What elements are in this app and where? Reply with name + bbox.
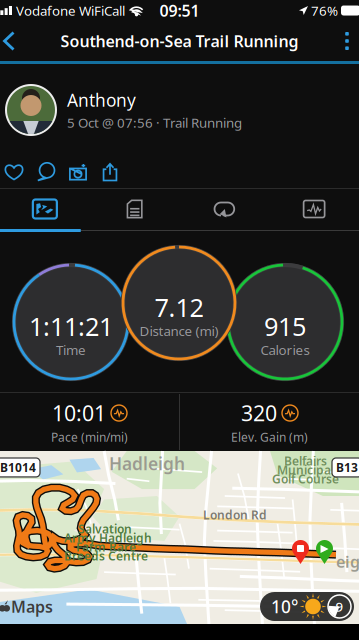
button[interactable]: Share (94, 156, 126, 188)
staticText: Time (56, 341, 86, 359)
staticText: Hadleigh (109, 452, 185, 475)
staticText: Breeds Centre (64, 548, 148, 564)
staticText: Golf Course (272, 471, 339, 487)
button[interactable]: Back (0, 21, 27, 61)
button[interactable]: More options (326, 21, 359, 61)
staticText: Calories (260, 341, 309, 359)
staticText: 5 Oct @ 07:56 · Trail Running (67, 114, 242, 131)
staticText: Southend-on-Sea Trail Running (60, 30, 298, 52)
button[interactable]: Details (90, 189, 180, 229)
staticText: 915 (264, 309, 306, 343)
button[interactable]: Map (0, 189, 90, 229)
staticText: 1:11:21 (29, 309, 113, 343)
staticText: Maps (11, 596, 53, 617)
button[interactable]: Charts (269, 189, 359, 229)
button[interactable]: Laps (179, 189, 269, 229)
staticText: Distance (mi) (139, 322, 218, 340)
staticText: 76% (311, 2, 338, 19)
button[interactable]: Like (0, 156, 30, 188)
staticText: 09:51 (159, 0, 199, 21)
staticText: Army Hadleigh (64, 530, 152, 546)
staticText: Pace (min/mi) (51, 429, 128, 445)
staticText: London Rd (203, 507, 267, 523)
button[interactable]: Add photo (62, 156, 94, 188)
staticText: 10:01 (52, 399, 106, 427)
staticText: Farm Rare (76, 539, 136, 555)
button[interactable]: Anthony profile photo (5, 84, 57, 136)
staticText: 10° (271, 595, 298, 618)
staticText: 9 (335, 598, 343, 615)
staticText: B1014 (0, 459, 36, 475)
staticText: Vodafone WiFiCall (16, 2, 125, 19)
staticText: Elev. Gain (m) (231, 429, 308, 445)
staticText: Salvation (78, 521, 132, 537)
staticText: Municipal (277, 462, 334, 478)
staticText: 320 (241, 399, 277, 427)
staticText: Belfairs (284, 453, 327, 469)
staticText: Anthony (67, 89, 136, 112)
staticText: 7.12 (154, 290, 203, 324)
button[interactable]: Comment (30, 156, 62, 188)
staticText: B13 (336, 459, 358, 475)
staticText: eig (336, 551, 359, 572)
